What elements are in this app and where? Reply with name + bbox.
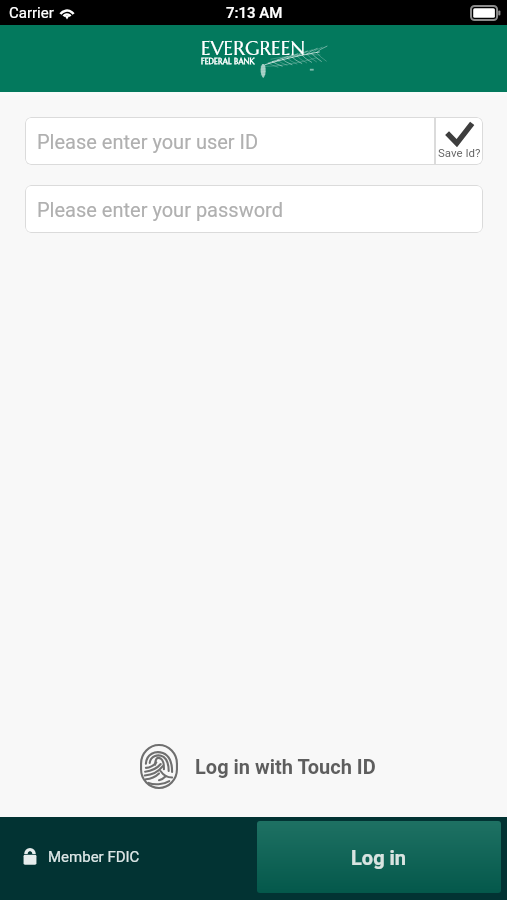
staticText: Log in (351, 846, 407, 869)
staticText: Carrier (9, 4, 54, 22)
staticText: Please enter your user ID (37, 130, 259, 153)
staticText: Member FDIC (48, 848, 140, 866)
button[interactable]: Please enter your user ID (25, 117, 435, 165)
staticText: FEDERAL BANK (201, 57, 255, 66)
button[interactable]: Save Id (435, 117, 483, 165)
button[interactable]: Log in with Touch ID (140, 744, 376, 789)
staticText: 7:13 AM (226, 4, 283, 22)
staticText: Log in with Touch ID (195, 755, 376, 778)
staticText: Please enter your password (37, 198, 283, 221)
button[interactable]: Please enter your password (25, 185, 483, 233)
staticText: Save Id? (438, 146, 481, 159)
staticText: EVERGREEN (201, 36, 305, 60)
button[interactable]: Log in (257, 821, 501, 893)
